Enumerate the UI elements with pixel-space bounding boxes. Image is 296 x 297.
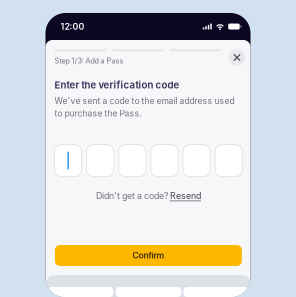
button[interactable]: Resend — [170, 191, 201, 201]
button[interactable]: Confirm — [55, 245, 242, 266]
staticText: Step 1/3: Add a Pass — [54, 56, 123, 65]
button[interactable]: Close — [228, 49, 245, 66]
staticText: Enter the verification code — [54, 79, 179, 91]
staticText: 12:00 — [60, 21, 84, 32]
staticText: Confirm — [132, 250, 164, 261]
staticText: We've sent a code to the email address u… — [54, 96, 234, 119]
staticText: Resend — [170, 191, 201, 201]
staticText: Didn't get a code? — [96, 191, 170, 201]
